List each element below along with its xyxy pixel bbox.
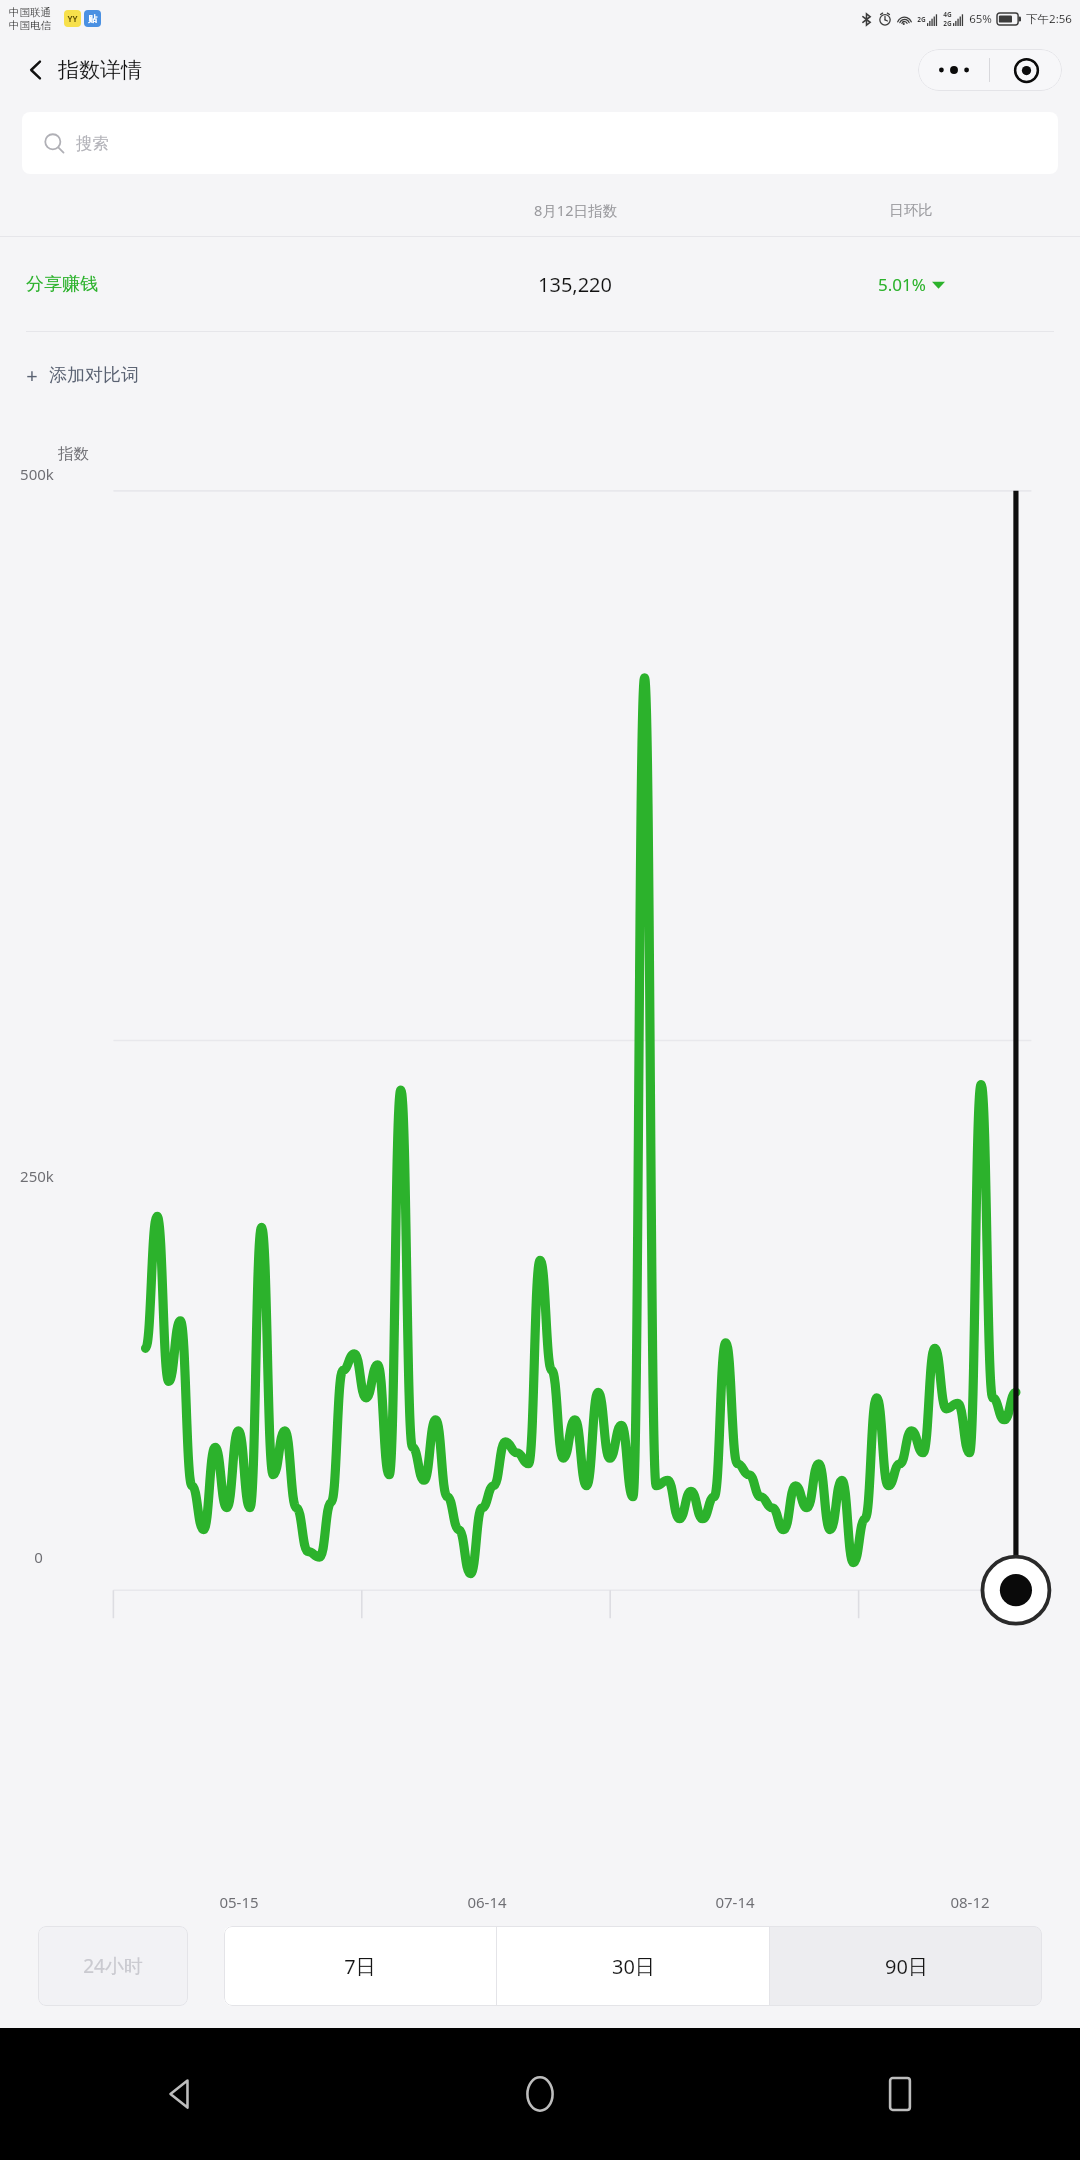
staticText: 中国电信 — [9, 19, 51, 32]
staticText: 搜索 — [76, 133, 109, 154]
button[interactable]: Back — [0, 2028, 360, 2160]
staticText: 250k — [20, 1166, 54, 1186]
staticText: 贴 — [88, 13, 97, 24]
button[interactable]: 90日 — [770, 1926, 1042, 2006]
staticText: 2G — [943, 19, 952, 28]
staticText: 指数详情 — [58, 57, 142, 83]
button[interactable]: Recents — [720, 2028, 1080, 2160]
staticText: 05-15 — [219, 1892, 259, 1912]
staticText: 135,220 — [538, 271, 612, 298]
button[interactable]: 7日 — [224, 1926, 496, 2006]
staticText: 分享赚钱 — [26, 273, 98, 296]
staticText: 指数 — [58, 444, 89, 464]
staticText: YY — [67, 13, 78, 24]
staticText: 下午2:56 — [1026, 11, 1072, 27]
button[interactable]: 搜索 — [22, 112, 1058, 174]
staticText: 0 — [34, 1547, 43, 1567]
button[interactable]: 30日 — [497, 1926, 769, 2006]
staticText: 8月12日指数 — [534, 200, 617, 220]
button[interactable]: Close — [990, 49, 1062, 91]
staticText: 06-14 — [467, 1892, 507, 1912]
staticText: 07-14 — [715, 1892, 755, 1912]
staticText: 5.01% — [878, 273, 926, 296]
staticText: 添加对比词 — [49, 364, 139, 387]
staticText: 2G — [917, 15, 926, 24]
staticText: + — [26, 362, 38, 389]
staticText: 4G — [943, 10, 952, 19]
staticText: 24小时 — [83, 1953, 143, 1979]
button[interactable]: 24小时 — [38, 1926, 188, 2006]
staticText: 中国联通 — [9, 6, 51, 19]
button[interactable]: Back — [14, 48, 58, 92]
staticText: 65% — [969, 11, 992, 27]
staticText: 08-12 — [950, 1892, 990, 1912]
button[interactable]: More — [918, 49, 989, 91]
staticText: 90日 — [885, 1953, 928, 1980]
staticText: 30日 — [612, 1953, 655, 1980]
staticText: 7日 — [344, 1953, 376, 1980]
staticText: 500k — [20, 464, 54, 484]
button[interactable]: Home — [360, 2028, 720, 2160]
staticText: 日环比 — [889, 201, 933, 219]
button[interactable]: + — [0, 332, 1080, 418]
button[interactable]: 分享赚钱 — [0, 237, 1080, 331]
